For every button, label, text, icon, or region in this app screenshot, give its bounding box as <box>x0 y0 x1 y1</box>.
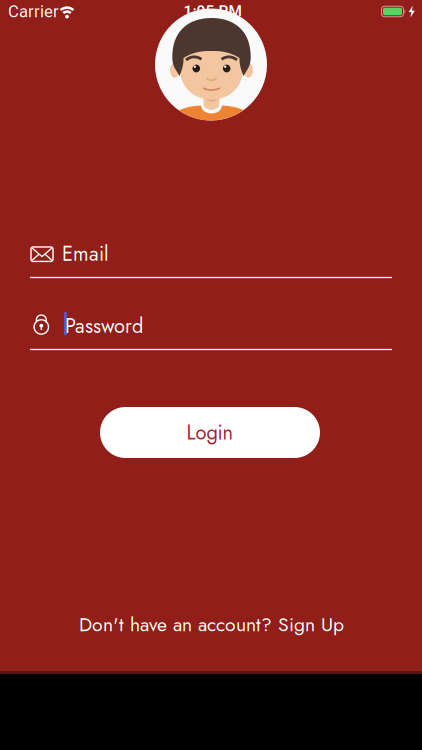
staticText: Carrier <box>8 2 59 21</box>
staticText: Email <box>62 239 109 268</box>
staticText: Don't have an account? Sign Up <box>79 610 344 638</box>
button[interactable]: Don't have an account? Sign Up <box>79 610 344 638</box>
staticText: Login <box>186 418 233 447</box>
staticText: Password <box>65 311 143 340</box>
staticText: 1:05 PM <box>183 2 241 20</box>
button[interactable]: Login <box>100 407 320 458</box>
button[interactable]: Email <box>0 220 422 284</box>
button[interactable]: Password <box>0 292 422 356</box>
